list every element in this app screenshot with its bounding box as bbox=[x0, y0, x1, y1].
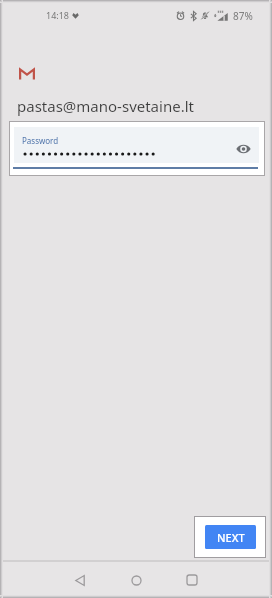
button[interactable]: Recents bbox=[170, 563, 214, 597]
staticText: NEXT bbox=[217, 530, 245, 545]
staticText: 87% bbox=[233, 9, 253, 23]
button[interactable]: Home bbox=[114, 563, 158, 597]
button[interactable]: Back bbox=[58, 563, 102, 597]
staticText: pastas@mano-svetaine.lt bbox=[17, 96, 194, 116]
staticText: 14:18 bbox=[46, 9, 70, 21]
button[interactable]: Show password bbox=[235, 140, 252, 157]
staticText: Password bbox=[22, 135, 59, 146]
button[interactable]: NEXT bbox=[205, 525, 256, 549]
